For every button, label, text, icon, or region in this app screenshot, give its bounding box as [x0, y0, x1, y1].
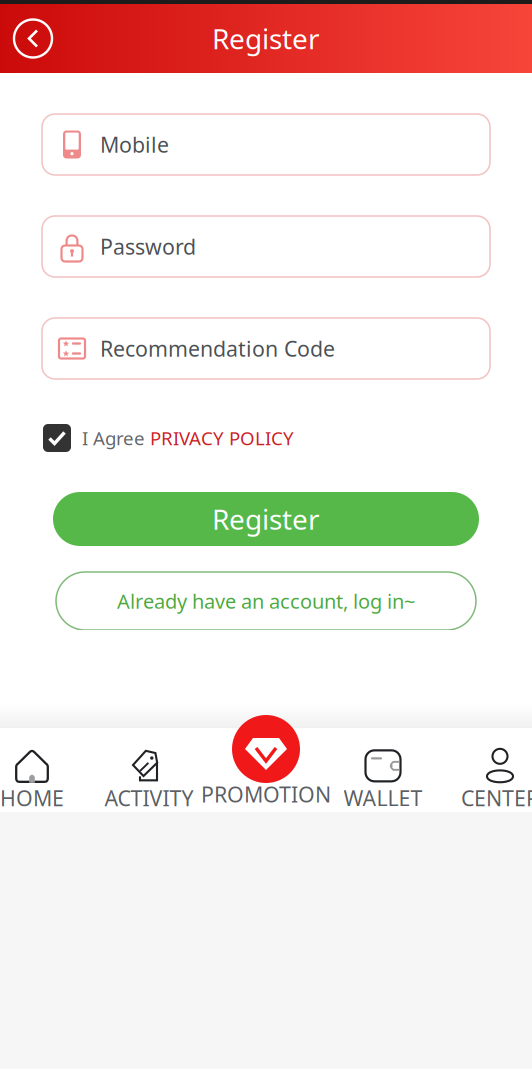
staticText: PRIVACY POLICY — [150, 426, 294, 450]
button[interactable]: HOME — [0, 728, 90, 812]
button[interactable]: WALLET — [324, 728, 441, 812]
staticText: Password — [100, 232, 196, 261]
staticText: Already have an account, log in~ — [117, 588, 415, 614]
button[interactable]: PRIVACY POLICY — [145, 426, 294, 450]
staticText: Recommendation Code — [100, 334, 335, 363]
button[interactable]: Already have an account, log in~ — [56, 572, 476, 630]
staticText: Mobile — [100, 130, 169, 159]
button[interactable]: Promotion — [232, 715, 300, 783]
staticText: ACTIVITY — [104, 784, 193, 812]
button[interactable]: PROMOTION — [207, 728, 324, 812]
staticText: Register — [212, 20, 320, 57]
staticText: WALLET — [343, 784, 422, 812]
staticText: CENTER — [461, 784, 532, 812]
staticText: I Agree — [82, 426, 145, 450]
button[interactable]: CENTER — [441, 728, 532, 812]
button[interactable]: Back — [0, 19, 52, 57]
staticText: PROMOTION — [201, 780, 331, 808]
button[interactable]: ACTIVITY — [90, 728, 207, 812]
staticText: HOME — [0, 784, 64, 812]
staticText: Register — [212, 500, 320, 538]
button[interactable]: I Agree — [43, 424, 71, 452]
button[interactable]: Register — [53, 492, 479, 546]
